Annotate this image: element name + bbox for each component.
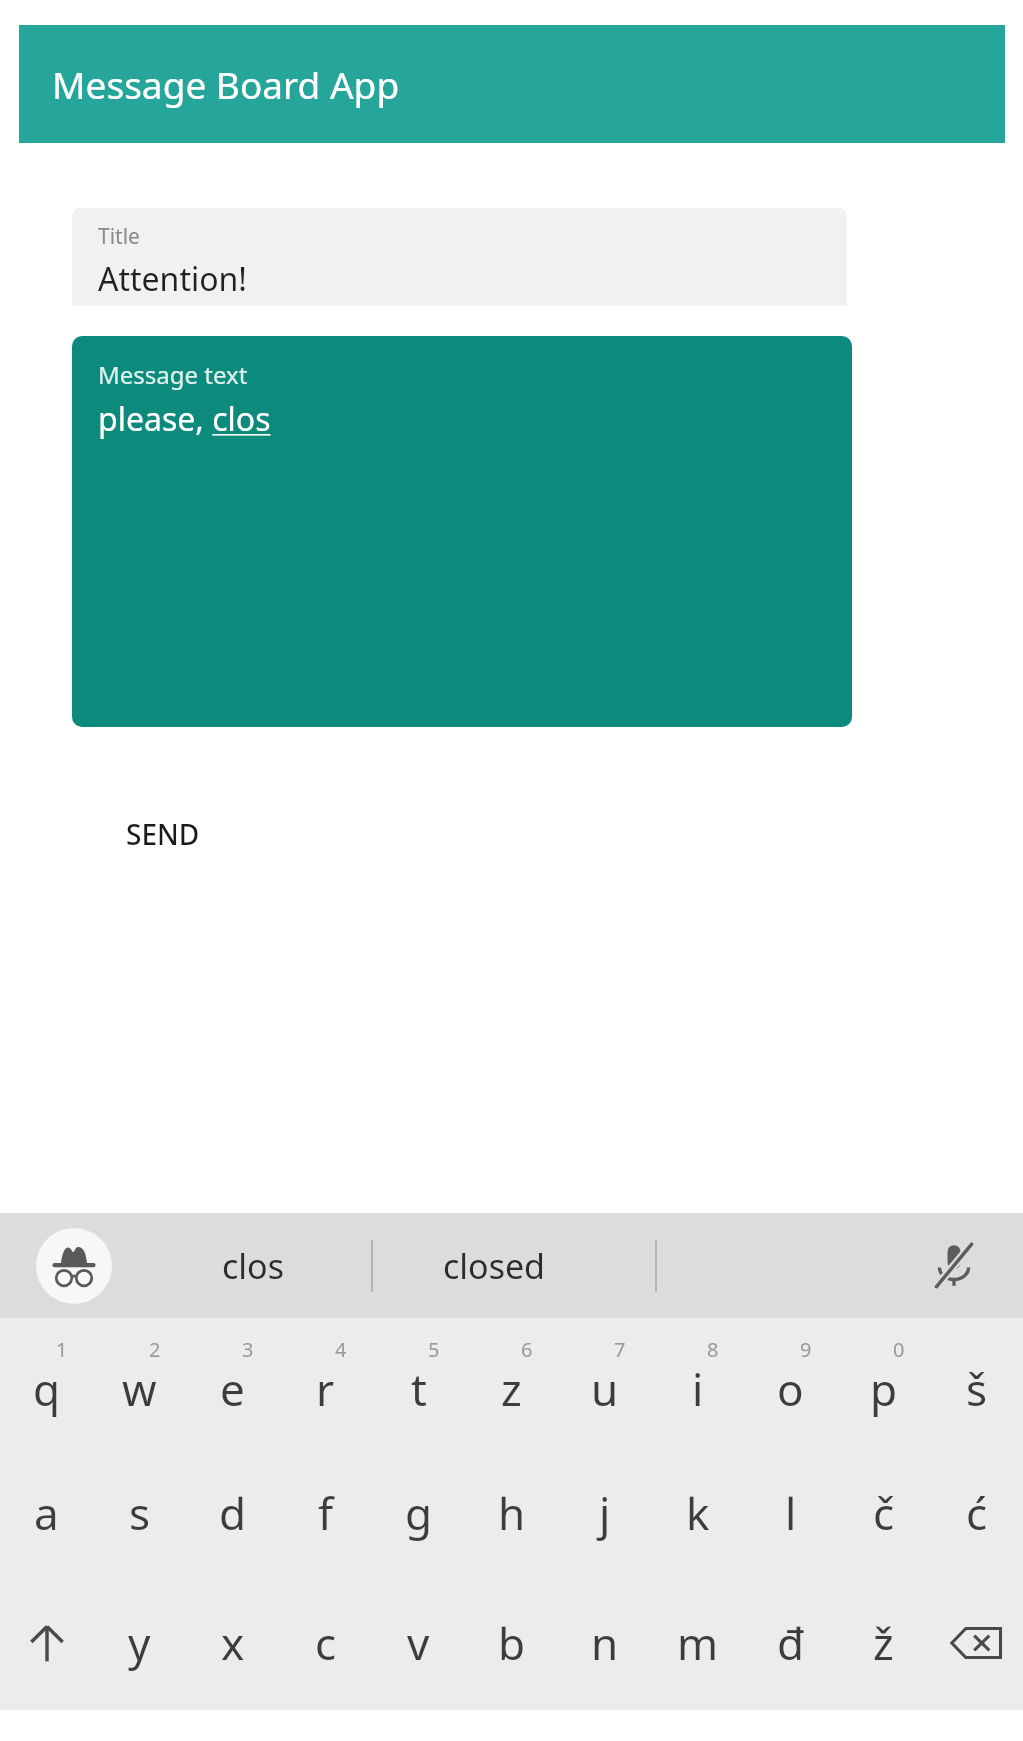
staticText: 6 [521, 1336, 533, 1363]
staticText: ć [966, 1483, 988, 1543]
button[interactable]: d [186, 1448, 279, 1578]
button[interactable]: n [558, 1578, 651, 1708]
staticText: v [407, 1613, 430, 1673]
staticText: Title [98, 222, 140, 251]
button[interactable]: đ [744, 1578, 837, 1708]
button[interactable]: 1 [0, 1318, 93, 1448]
staticText: 4 [335, 1336, 347, 1363]
staticText: j [599, 1483, 611, 1543]
staticText: 5 [428, 1336, 440, 1363]
staticText: please, clos [98, 397, 271, 441]
staticText: ž [873, 1613, 894, 1673]
button[interactable]: 3 [186, 1318, 279, 1448]
staticText: đ [777, 1613, 805, 1673]
staticText: h [498, 1483, 526, 1543]
staticText: Message text [98, 358, 248, 391]
staticText: SEND [126, 815, 200, 853]
staticText: l [785, 1483, 797, 1543]
staticText: w [122, 1359, 157, 1419]
staticText: 1 [56, 1336, 68, 1363]
staticText: n [591, 1613, 619, 1673]
staticText: Message Board App [52, 59, 400, 109]
button[interactable]: l [744, 1448, 837, 1578]
staticText: closed [443, 1243, 546, 1289]
button[interactable]: c [279, 1578, 372, 1708]
button[interactable]: ć [930, 1448, 1023, 1578]
staticText: g [405, 1483, 433, 1543]
staticText: u [591, 1359, 619, 1419]
button[interactable]: s [93, 1448, 186, 1578]
staticText: š [966, 1359, 988, 1419]
button[interactable]: 0 [837, 1318, 930, 1448]
button[interactable]: Backspace [930, 1578, 1023, 1708]
button[interactable]: closed [380, 1213, 608, 1318]
staticText: d [219, 1483, 247, 1543]
staticText: o [777, 1359, 804, 1419]
button[interactable]: 5 [372, 1318, 465, 1448]
staticText: s [129, 1483, 151, 1543]
button[interactable]: 9 [744, 1318, 837, 1448]
staticText: c [315, 1613, 337, 1673]
button[interactable]: ž [837, 1578, 930, 1708]
button[interactable]: Shift [0, 1578, 93, 1708]
button[interactable]: j [558, 1448, 651, 1578]
button[interactable]: Title [72, 208, 847, 306]
staticText: clos [222, 1243, 284, 1289]
button[interactable]: Message text [72, 336, 852, 727]
staticText: q [33, 1359, 61, 1419]
button[interactable]: SEND [78, 789, 248, 879]
staticText: p [870, 1359, 898, 1419]
button[interactable]: Incognito mode [36, 1228, 112, 1304]
staticText: y [128, 1613, 151, 1673]
button[interactable]: Voice input disabled [909, 1221, 999, 1311]
staticText: x [221, 1613, 245, 1673]
staticText: i [692, 1359, 704, 1419]
button[interactable]: f [279, 1448, 372, 1578]
button[interactable]: x [186, 1578, 279, 1708]
button[interactable]: a [0, 1448, 93, 1578]
button[interactable]: h [465, 1448, 558, 1578]
staticText: 7 [614, 1336, 626, 1363]
button[interactable]: b [465, 1578, 558, 1708]
button[interactable]: m [651, 1578, 744, 1708]
staticText: 8 [707, 1336, 719, 1363]
button[interactable]: 2 [93, 1318, 186, 1448]
staticText: e [220, 1359, 245, 1419]
button[interactable]: 8 [651, 1318, 744, 1448]
button[interactable]: č [837, 1448, 930, 1578]
staticText: m [677, 1613, 719, 1673]
staticText: Attention! [98, 257, 247, 301]
staticText: 2 [149, 1336, 161, 1363]
staticText: a [34, 1483, 59, 1543]
staticText: t [411, 1359, 427, 1419]
button[interactable]: clos [140, 1213, 365, 1318]
staticText: b [498, 1613, 526, 1673]
button[interactable]: 6 [465, 1318, 558, 1448]
staticText: f [318, 1483, 334, 1543]
staticText: k [686, 1483, 710, 1543]
button[interactable]: 7 [558, 1318, 651, 1448]
staticText: 9 [800, 1336, 812, 1363]
button[interactable]: g [372, 1448, 465, 1578]
staticText: z [501, 1359, 522, 1419]
button[interactable]: 4 [279, 1318, 372, 1448]
staticText: 3 [242, 1336, 254, 1363]
button[interactable]: v [372, 1578, 465, 1708]
staticText: č [873, 1483, 895, 1543]
staticText: 0 [893, 1336, 905, 1363]
button[interactable]: k [651, 1448, 744, 1578]
button[interactable]: y [93, 1578, 186, 1708]
button[interactable]: š [930, 1318, 1023, 1448]
staticText: r [316, 1359, 335, 1419]
